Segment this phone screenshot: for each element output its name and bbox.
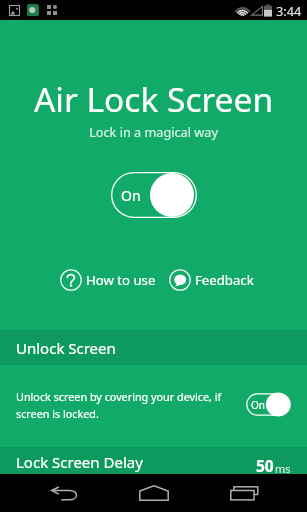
button[interactable]: Home (126, 474, 182, 512)
staticText: Air Lock Screen (0, 76, 307, 122)
staticText: Feedback (195, 271, 254, 289)
button[interactable]: Unlock Screen (0, 330, 307, 365)
button[interactable]: Feedback (165, 264, 258, 296)
staticText: 3:44 (276, 2, 302, 19)
button[interactable]: On (111, 172, 197, 218)
button[interactable]: Recent apps (216, 474, 272, 512)
staticText: On (251, 398, 265, 412)
staticText: Unlock Screen (16, 338, 116, 358)
staticText: How to use (86, 271, 156, 289)
staticText: Lock in a magical way (0, 123, 307, 140)
staticText: ms (275, 461, 291, 476)
staticText: Lock Screen Delay (16, 452, 143, 472)
button[interactable]: Unlock screen by covering your device, i… (0, 365, 307, 447)
button[interactable]: Toggle unlock screen (246, 393, 291, 416)
staticText: On (121, 186, 141, 205)
button[interactable]: How to use (56, 264, 160, 296)
staticText: 50 (256, 455, 274, 476)
button[interactable]: Lock Screen Delay (0, 447, 307, 474)
staticText: Unlock screen by covering your device, i… (16, 389, 232, 421)
button[interactable]: Back (37, 474, 92, 512)
